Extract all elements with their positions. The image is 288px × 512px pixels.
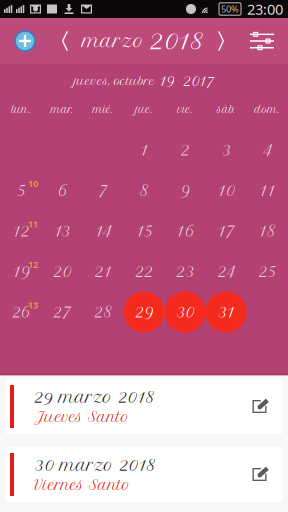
staticText: Viernes Santo [34, 477, 130, 493]
button[interactable]: 12 [0, 211, 41, 251]
button[interactable]: 31 [205, 292, 246, 332]
staticText: 4 [262, 141, 271, 159]
staticText: 29 [135, 303, 153, 321]
staticText: 50% [221, 3, 239, 15]
staticText: 23:00 [247, 0, 283, 19]
staticText: 6 [57, 181, 67, 200]
button[interactable]: 7 [82, 170, 123, 211]
button[interactable]: 30 [164, 292, 205, 332]
staticText: Jueves Santo [34, 409, 129, 425]
button[interactable]: 25 [246, 251, 287, 292]
staticText: 11 [28, 218, 38, 230]
staticText: 28 [94, 303, 112, 321]
button[interactable]: 2 [164, 130, 205, 170]
staticText: dom. [254, 104, 279, 115]
button[interactable]: 29 [123, 292, 164, 332]
staticText: jueves, octubre [74, 74, 159, 88]
staticText: 8 [139, 181, 148, 200]
staticText: 22 [135, 262, 153, 281]
button[interactable]: 28 [82, 292, 123, 332]
button[interactable]: 13 [41, 211, 82, 251]
staticText: 10 [217, 181, 234, 200]
button[interactable]: 9 [164, 170, 205, 211]
button[interactable]: 22 [123, 251, 164, 292]
staticText: 24 [217, 262, 234, 281]
staticText: mié. [93, 104, 113, 115]
button[interactable]: 15 [123, 211, 164, 251]
staticText: 30 [176, 303, 194, 321]
button[interactable]: 19 [0, 251, 41, 292]
button[interactable]: 20 [41, 251, 82, 292]
staticText: 16 [176, 222, 194, 240]
staticText: 12 [12, 222, 29, 240]
button[interactable]: Next month [206, 18, 236, 64]
button[interactable]: Add event [0, 18, 50, 64]
staticText: 1 [140, 141, 148, 159]
staticText: mar. [51, 104, 73, 115]
staticText: 18 [258, 222, 275, 240]
button[interactable]: 17 [205, 211, 246, 251]
staticText: 31 [217, 303, 234, 321]
staticText: 12 [28, 258, 38, 271]
staticText: 17 [217, 222, 234, 240]
staticText: sáb. [217, 104, 235, 115]
button[interactable]: 26 [0, 292, 41, 332]
staticText: 11 [259, 181, 275, 200]
staticText: lun. [11, 104, 30, 115]
staticText: 21 [94, 262, 111, 281]
button[interactable]: 6 [41, 170, 82, 211]
staticText: 3 [221, 141, 230, 159]
button[interactable]: 11 [246, 170, 287, 211]
staticText: 15 [136, 222, 152, 240]
staticText: 2018 [149, 27, 203, 55]
button[interactable]: 21 [82, 251, 123, 292]
staticText: 20 [53, 262, 71, 281]
button[interactable]: 5 [0, 170, 41, 211]
staticText: marzo [82, 30, 143, 52]
staticText: 27 [53, 303, 71, 321]
staticText: 30 marzo 2018 [34, 456, 155, 475]
button[interactable]: 4 [246, 130, 287, 170]
button[interactable]: 24 [205, 251, 246, 292]
button[interactable]: 23 [164, 251, 205, 292]
staticText: 9 [180, 181, 189, 200]
staticText: jue. [135, 104, 152, 115]
staticText: 10 [28, 177, 38, 190]
button[interactable]: Settings [236, 18, 288, 64]
staticText: 23 [176, 262, 194, 281]
button[interactable]: 1 [123, 130, 164, 170]
staticText: 19 [12, 262, 29, 281]
staticText: 26 [12, 303, 30, 321]
staticText: 13 [54, 222, 70, 240]
staticText: 13 [28, 299, 38, 311]
button[interactable]: Previous month [50, 18, 80, 64]
staticText: 25 [258, 262, 275, 281]
staticText: 2 [180, 141, 189, 159]
staticText: 14 [95, 222, 111, 240]
button[interactable]: 18 [246, 211, 287, 251]
staticText: 5 [17, 181, 25, 200]
button[interactable]: 8 [123, 170, 164, 211]
staticText: 2017 [183, 73, 214, 89]
button[interactable]: 30 marzo 2018 [5, 447, 282, 502]
button[interactable]: 3 [205, 130, 246, 170]
button[interactable]: 16 [164, 211, 205, 251]
staticText: 19 [159, 73, 175, 89]
staticText: 7 [98, 181, 107, 200]
button[interactable]: 14 [82, 211, 123, 251]
staticText: vie. [177, 104, 192, 115]
button[interactable]: 29 marzo 2018 [5, 379, 282, 434]
button[interactable]: 10 [205, 170, 246, 211]
button[interactable]: 27 [41, 292, 82, 332]
staticText: 29 marzo 2018 [34, 388, 154, 407]
